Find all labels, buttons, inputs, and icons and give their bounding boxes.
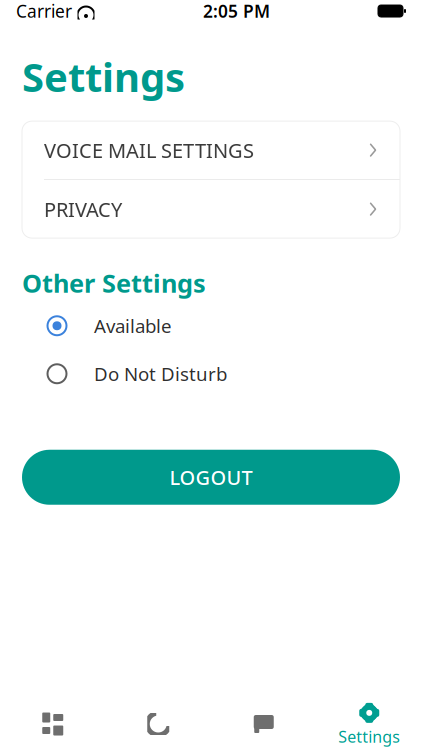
button[interactable]: Dashboard xyxy=(0,698,105,750)
staticText: Do Not Disturb xyxy=(94,361,227,386)
staticText: Other Settings xyxy=(22,266,206,300)
button[interactable]: Calls xyxy=(105,698,211,750)
button[interactable]: Messages xyxy=(211,698,316,750)
staticText: 2:05 PM xyxy=(203,0,270,22)
button[interactable]: LOGOUT xyxy=(22,450,400,505)
button[interactable]: PRIVACY xyxy=(22,180,400,238)
staticText: VOICE MAIL SETTINGS xyxy=(44,137,254,163)
button[interactable]: Settings xyxy=(316,698,422,750)
button[interactable]: VOICE MAIL SETTINGS xyxy=(22,121,400,179)
staticText: Settings xyxy=(338,726,400,747)
staticText: Settings xyxy=(22,50,185,103)
staticText: Available xyxy=(94,313,172,338)
staticText: PRIVACY xyxy=(44,196,122,222)
button[interactable]: Available xyxy=(0,306,422,346)
button[interactable]: Do Not Disturb xyxy=(0,354,422,394)
staticText: Carrier xyxy=(16,0,72,22)
staticText: LOGOUT xyxy=(169,464,252,491)
